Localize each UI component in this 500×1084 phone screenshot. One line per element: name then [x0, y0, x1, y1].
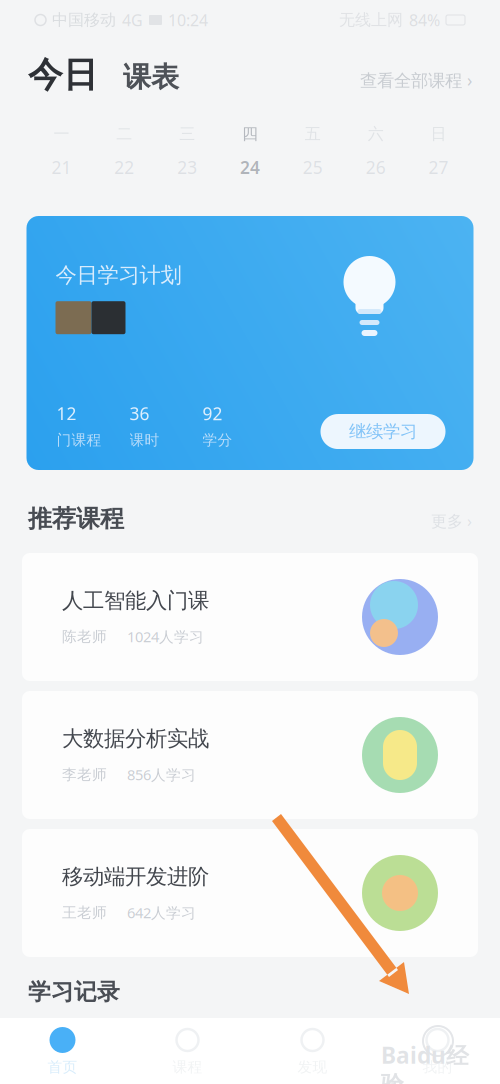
- staticText: 22: [114, 156, 134, 179]
- staticText: 日: [431, 124, 447, 144]
- button[interactable]: 五: [281, 124, 344, 179]
- staticText: 移动端开发进阶: [62, 864, 209, 890]
- staticText: 26: [366, 156, 386, 179]
- staticText: 课时: [129, 431, 159, 449]
- staticText: 一: [53, 124, 69, 144]
- staticText: 我的: [422, 1058, 452, 1076]
- button[interactable]: 查看全部课程 ›: [360, 69, 472, 92]
- button[interactable]: 更多 ›: [431, 510, 472, 531]
- staticText: 642人学习: [127, 903, 196, 922]
- staticText: 大数据分析实战: [62, 726, 209, 752]
- staticText: 12: [56, 402, 76, 425]
- button[interactable]: 大数据分析实战: [22, 691, 478, 819]
- staticText: 24: [240, 156, 260, 179]
- staticText: 84%: [409, 9, 440, 31]
- button[interactable]: 三: [156, 124, 219, 179]
- staticText: 李老师: [62, 766, 107, 784]
- staticText: 人工智能入门课: [62, 588, 209, 614]
- staticText: 中国移动: [52, 10, 116, 30]
- staticText: 10:24: [168, 9, 208, 31]
- staticText: 陈老师: [62, 628, 107, 646]
- staticText: 二: [116, 124, 132, 144]
- staticText: 学习记录: [28, 978, 120, 1006]
- staticText: 36: [129, 402, 149, 425]
- staticText: 推荐课程: [28, 504, 124, 533]
- button[interactable]: 我的: [375, 1018, 500, 1084]
- staticText: 课程: [172, 1058, 202, 1076]
- staticText: 1024人学习: [127, 627, 204, 646]
- button[interactable]: 四: [219, 124, 281, 179]
- staticText: 21: [51, 156, 71, 179]
- staticText: 发现: [297, 1058, 327, 1076]
- staticText: 继续学习: [349, 421, 417, 442]
- staticText: 五: [305, 124, 321, 144]
- staticText: 27: [429, 156, 449, 179]
- staticText: 学分: [202, 431, 232, 449]
- staticText: 三: [179, 124, 195, 144]
- button[interactable]: 移动端开发进阶: [22, 829, 478, 957]
- staticText: 92: [202, 402, 222, 425]
- button[interactable]: 首页: [0, 1018, 125, 1084]
- staticText: 今日: [28, 54, 98, 96]
- staticText: Baidu经验: [381, 1040, 469, 1084]
- button[interactable]: 人工智能入门课: [22, 553, 478, 681]
- button[interactable]: 二: [93, 124, 156, 179]
- staticText: 无线上网: [339, 10, 403, 30]
- staticText: 更多 ›: [431, 510, 472, 531]
- staticText: 首页: [47, 1058, 77, 1076]
- staticText: 四: [242, 124, 258, 144]
- staticText: 今日学习计划: [55, 262, 181, 288]
- button[interactable]: 今日学习计划: [26, 216, 473, 470]
- button[interactable]: 六: [344, 124, 407, 179]
- button[interactable]: 日: [407, 124, 470, 179]
- staticText: 23: [177, 156, 197, 179]
- staticText: 门课程: [56, 431, 101, 449]
- staticText: 王老师: [62, 904, 107, 922]
- staticText: 查看全部课程 ›: [360, 69, 472, 92]
- staticText: 856人学习: [127, 765, 196, 784]
- staticText: 六: [368, 124, 384, 144]
- staticText: 4G: [122, 9, 143, 31]
- staticText: 25: [303, 156, 323, 179]
- staticText: 课表: [123, 60, 179, 94]
